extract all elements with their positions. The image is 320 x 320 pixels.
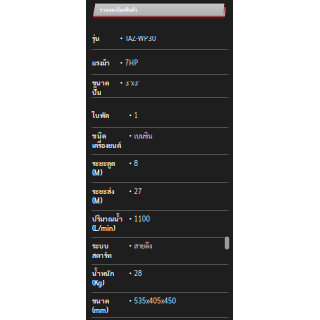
staticText: ใบพัด	[92, 111, 109, 120]
staticText: (M)	[92, 168, 102, 177]
staticText: 1100	[134, 214, 150, 223]
staticText: (L/min)	[92, 224, 115, 233]
staticText: ระยะดูด	[92, 159, 115, 168]
staticText: 3"x3"	[125, 78, 140, 87]
staticText: ระบบ	[92, 241, 109, 250]
staticText: 535x405x450	[134, 296, 176, 305]
staticText: ชนิด	[92, 131, 106, 140]
staticText: ขนาด	[92, 296, 109, 305]
staticText: เบนซิน	[134, 131, 152, 140]
staticText: 28	[134, 269, 142, 278]
staticText: (M)	[92, 196, 102, 205]
staticText: TAZ-WP30	[125, 34, 156, 43]
staticText: (Kg)	[92, 278, 104, 287]
staticText: แรงม้า	[92, 58, 110, 67]
staticText: 7HP	[125, 58, 138, 67]
staticText: ปั๊ม	[92, 88, 101, 97]
staticText: ระยะส่ง	[92, 187, 114, 196]
staticText: 8	[134, 159, 138, 168]
staticText: รายละเอียดสินค้า	[100, 6, 138, 13]
staticText: 1	[134, 111, 138, 120]
staticText: (mm)	[92, 306, 108, 315]
staticText: สายดึง	[134, 241, 152, 250]
staticText: น้ำหนัก	[92, 269, 114, 278]
staticText: ปริมาณน้ำ	[92, 214, 123, 223]
staticText: 27	[134, 187, 142, 196]
staticText: รุ่น	[92, 34, 100, 43]
staticText: สตาร์ท	[92, 251, 112, 260]
staticText: ขนาด	[92, 78, 109, 87]
staticText: เครื่องยนต์	[92, 141, 121, 150]
